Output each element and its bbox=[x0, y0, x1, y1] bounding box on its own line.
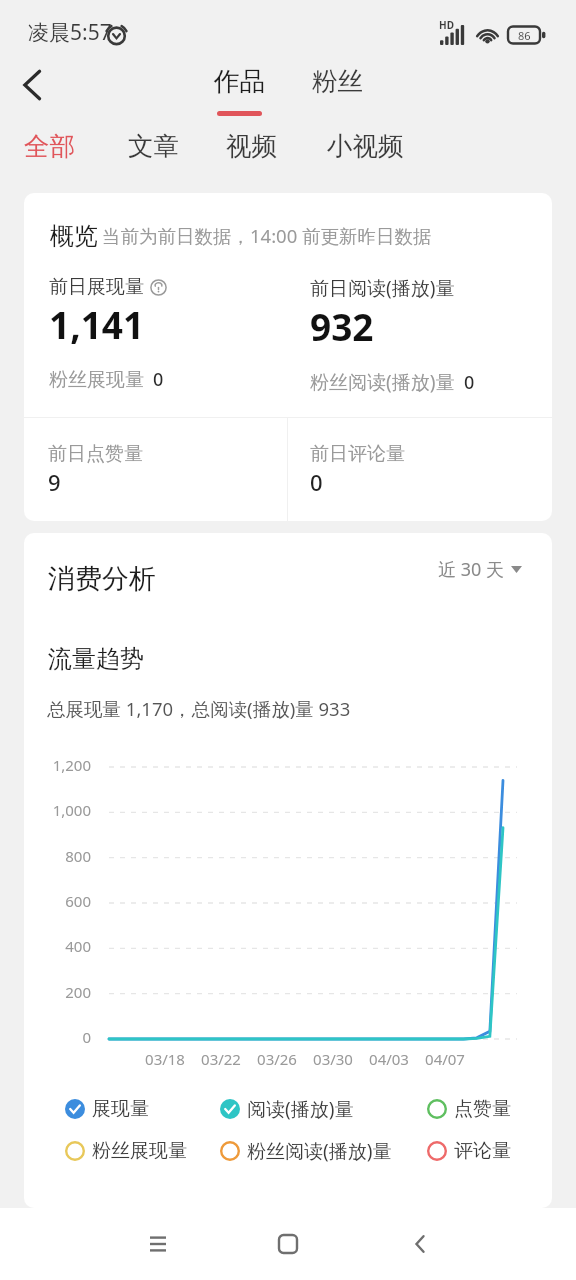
staticText: 全部 bbox=[24, 130, 75, 162]
staticText: 前日评论量 bbox=[310, 442, 405, 466]
staticText: 0 bbox=[310, 467, 323, 497]
button[interactable]: Back bbox=[396, 1220, 444, 1268]
staticText: 粉丝 bbox=[312, 65, 363, 97]
staticText: 粉丝阅读(播放)量 bbox=[310, 369, 455, 395]
staticText: 前日阅读(播放)量 bbox=[310, 275, 455, 301]
staticText: HD bbox=[439, 18, 454, 32]
staticText: 总展现量 1,170，总阅读(播放)量 933 bbox=[47, 696, 351, 721]
staticText: 03/30 bbox=[301, 1049, 365, 1069]
button[interactable]: 粉丝 bbox=[300, 59, 375, 97]
button[interactable]: 点赞量 bbox=[427, 1095, 547, 1123]
staticText: 当前为前日数据，14:00 前更新昨日数据 bbox=[102, 223, 432, 248]
staticText: 阅读(播放)量 bbox=[247, 1096, 354, 1122]
button[interactable]: 文章 bbox=[116, 122, 191, 170]
staticText: 600 bbox=[31, 891, 91, 911]
button[interactable]: 视频 bbox=[214, 122, 289, 170]
staticText: 1,000 bbox=[31, 800, 91, 820]
staticText: 03/26 bbox=[245, 1049, 309, 1069]
staticText: 1,141 bbox=[49, 299, 145, 349]
staticText: 932 bbox=[310, 301, 374, 351]
button[interactable]: 粉丝阅读(播放)量 bbox=[220, 1137, 423, 1165]
staticText: 流量趋势 bbox=[48, 644, 144, 674]
staticText: 概览 bbox=[50, 221, 98, 251]
staticText: 作品 bbox=[214, 65, 265, 97]
staticText: 400 bbox=[31, 936, 91, 956]
staticText: 粉丝阅读(播放)量 bbox=[247, 1138, 392, 1164]
staticText: 消费分析 bbox=[48, 562, 156, 596]
staticText: 1,200 bbox=[31, 755, 91, 775]
staticText: 粉丝展现量 bbox=[49, 368, 144, 392]
staticText: 86 bbox=[518, 28, 531, 43]
staticText: 点赞量 bbox=[454, 1097, 511, 1121]
staticText: 03/22 bbox=[189, 1049, 253, 1069]
staticText: 近 30 天 bbox=[438, 557, 504, 582]
staticText: 0 bbox=[153, 367, 164, 392]
staticText: 04/03 bbox=[357, 1049, 421, 1069]
button[interactable]: 近 30 天 bbox=[438, 557, 522, 582]
staticText: 0 bbox=[31, 1027, 91, 1047]
button[interactable]: Home bbox=[264, 1220, 312, 1268]
staticText: 03/18 bbox=[133, 1049, 197, 1069]
button[interactable]: 展现量 bbox=[65, 1095, 220, 1123]
staticText: 凌晨5:57 bbox=[28, 18, 112, 47]
button[interactable]: 粉丝展现量 bbox=[65, 1137, 220, 1165]
button[interactable]: 作品 bbox=[202, 59, 277, 116]
button[interactable]: 小视频 bbox=[315, 122, 416, 170]
button[interactable]: Back bbox=[7, 60, 57, 110]
staticText: 粉丝展现量 bbox=[92, 1139, 187, 1163]
staticText: 04/07 bbox=[413, 1049, 477, 1069]
staticText: 0 bbox=[464, 370, 475, 395]
button[interactable]: 评论量 bbox=[427, 1137, 547, 1165]
staticText: 200 bbox=[31, 982, 91, 1002]
button[interactable]: 全部 bbox=[12, 122, 87, 170]
staticText: 评论量 bbox=[454, 1139, 511, 1163]
staticText: 800 bbox=[31, 846, 91, 866]
staticText: 展现量 bbox=[92, 1097, 149, 1121]
staticText: 前日点赞量 bbox=[48, 442, 143, 466]
staticText: 前日展现量 bbox=[49, 275, 144, 299]
staticText: 9 bbox=[48, 467, 61, 497]
button[interactable]: Recent apps bbox=[134, 1220, 182, 1268]
staticText: 文章 bbox=[128, 130, 179, 162]
staticText: 小视频 bbox=[327, 130, 404, 162]
button[interactable]: 阅读(播放)量 bbox=[220, 1095, 423, 1123]
staticText: 视频 bbox=[226, 130, 277, 162]
